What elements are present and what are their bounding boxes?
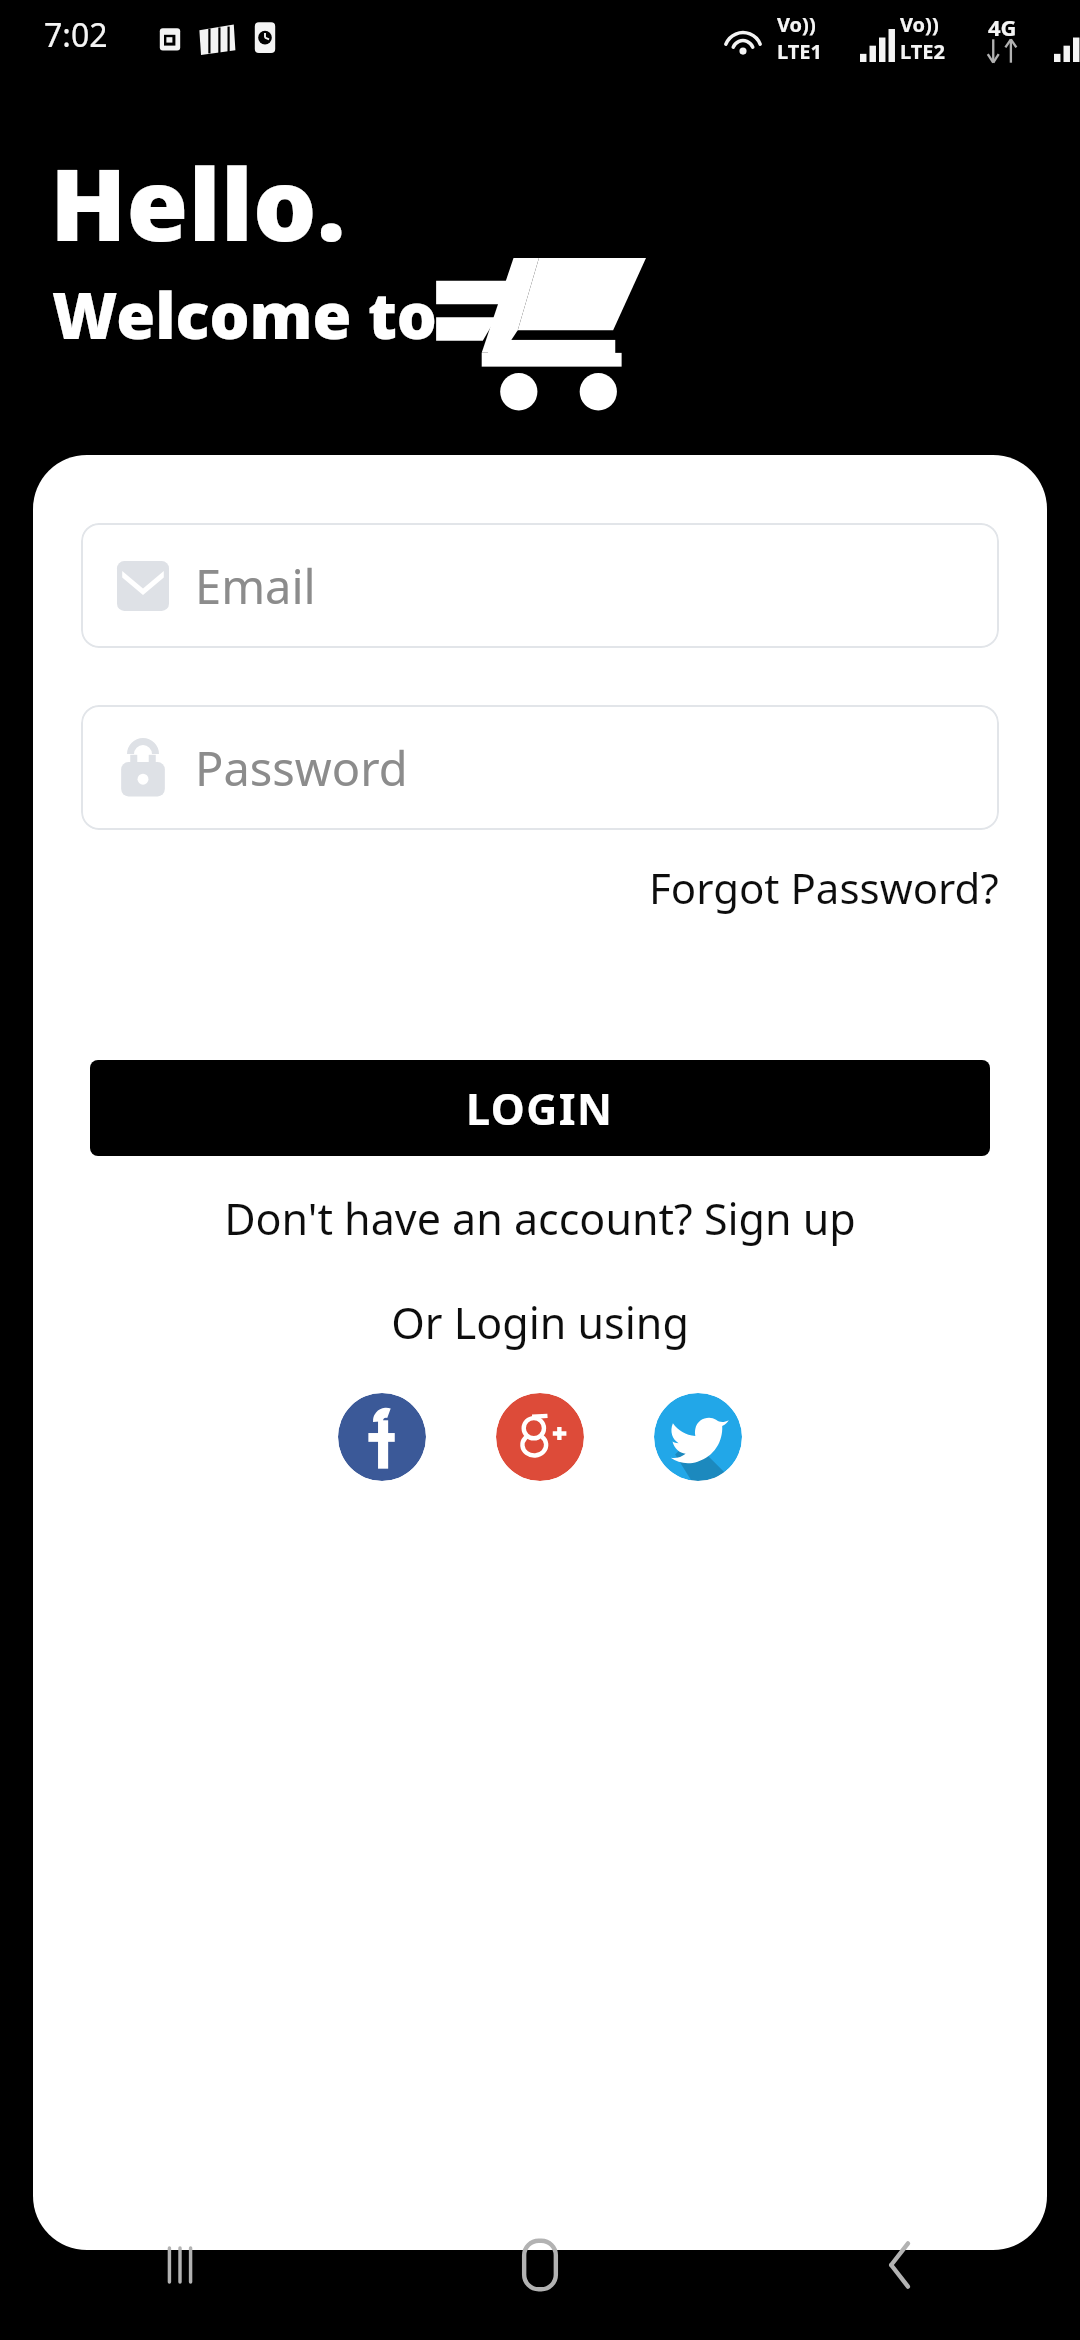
button[interactable]: LOGIN [90,1060,990,1156]
staticText: Forgot Password? [649,859,999,916]
staticText: 7:02 [44,13,108,57]
staticText: LOGIN [466,1079,614,1138]
staticText: Email [195,554,316,618]
button[interactable]: Login with Google Plus [496,1393,584,1481]
button[interactable]: Don't have an account? Sign up [212,1185,868,1252]
staticText: Welcome to [52,272,437,358]
button[interactable]: Recent apps [0,2190,360,2340]
button[interactable]: Forgot Password? [641,851,1007,924]
staticText: Password [195,736,408,800]
staticText: Don't have an account? Sign up [224,1189,856,1248]
staticText: 4G [988,12,1017,42]
button[interactable]: Home [360,2190,720,2340]
staticText: Vo)) [777,11,816,38]
staticText: Hello. [50,134,346,270]
staticText: LTE2 [900,38,945,65]
button[interactable]: Login with Facebook [338,1393,426,1481]
button[interactable]: Email [81,523,999,648]
staticText: Or Login using [391,1293,689,1352]
button[interactable]: Back [720,2190,1080,2340]
button[interactable]: Login with Twitter [654,1393,742,1481]
staticText: Vo)) [900,11,939,38]
staticText: LTE1 [777,38,822,65]
button[interactable]: Password [81,705,999,830]
